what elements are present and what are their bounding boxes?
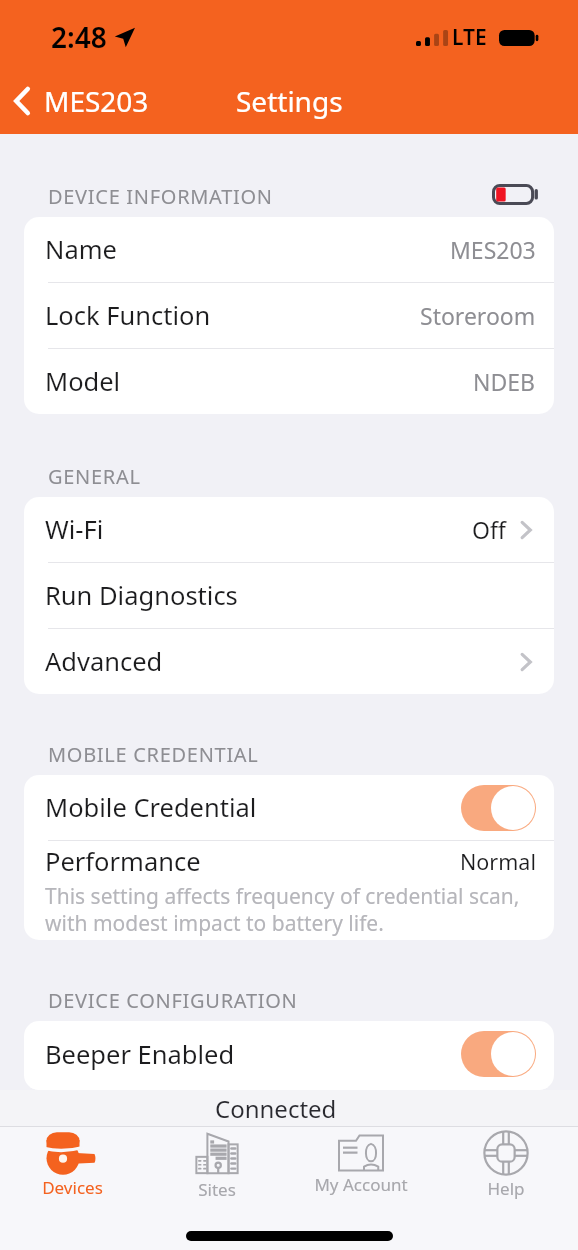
button[interactable]: Lock Function: [24, 283, 554, 348]
button[interactable]: Sites: [145, 1127, 289, 1202]
button[interactable]: Mobile Credential toggle: [461, 785, 536, 831]
staticText: Advanced: [45, 644, 163, 679]
button[interactable]: Performance: [24, 841, 554, 940]
staticText: DEVICE CONFIGURATION: [48, 987, 298, 1014]
staticText: Storeroom: [420, 300, 536, 331]
staticText: My Account: [314, 1173, 408, 1196]
staticText: Devices: [42, 1176, 103, 1199]
button[interactable]: Name: [24, 217, 554, 282]
staticText: MOBILE CREDENTIAL: [48, 741, 259, 768]
button[interactable]: Mobile Credential: [24, 775, 554, 840]
staticText: DEVICE INFORMATION: [48, 183, 273, 210]
button[interactable]: Beeper Enabled: [24, 1021, 554, 1087]
staticText: This setting affects frequency of creden…: [45, 882, 520, 937]
staticText: Normal: [460, 847, 536, 876]
button[interactable]: Help: [434, 1127, 578, 1202]
button[interactable]: My Account: [289, 1127, 433, 1202]
staticText: Wi-Fi: [45, 512, 104, 547]
button[interactable]: MES203: [0, 74, 163, 128]
staticText: MES203: [450, 234, 536, 265]
staticText: MES203: [44, 82, 149, 120]
staticText: Model: [45, 364, 121, 399]
button[interactable]: Wi-Fi: [24, 497, 554, 562]
staticText: Run Diagnostics: [45, 578, 238, 613]
staticText: Mobile Credential: [45, 790, 257, 825]
staticText: Help: [487, 1177, 525, 1200]
button[interactable]: Devices: [0, 1127, 144, 1202]
button[interactable]: Run Diagnostics: [24, 563, 554, 628]
staticText: Connected: [215, 1092, 337, 1125]
staticText: Name: [45, 232, 117, 267]
staticText: 2:48: [51, 18, 107, 56]
staticText: Lock Function: [45, 298, 211, 333]
staticText: Off: [472, 514, 506, 545]
staticText: Performance: [45, 844, 201, 879]
staticText: Settings: [236, 82, 343, 120]
staticText: NDEB: [473, 366, 536, 397]
button[interactable]: Model: [24, 349, 554, 414]
staticText: LTE: [452, 23, 487, 52]
staticText: Sites: [198, 1178, 236, 1201]
button[interactable]: Advanced: [24, 629, 554, 694]
staticText: Beeper Enabled: [45, 1037, 235, 1072]
staticText: GENERAL: [48, 463, 141, 490]
button[interactable]: Beeper Enabled toggle: [461, 1031, 536, 1077]
